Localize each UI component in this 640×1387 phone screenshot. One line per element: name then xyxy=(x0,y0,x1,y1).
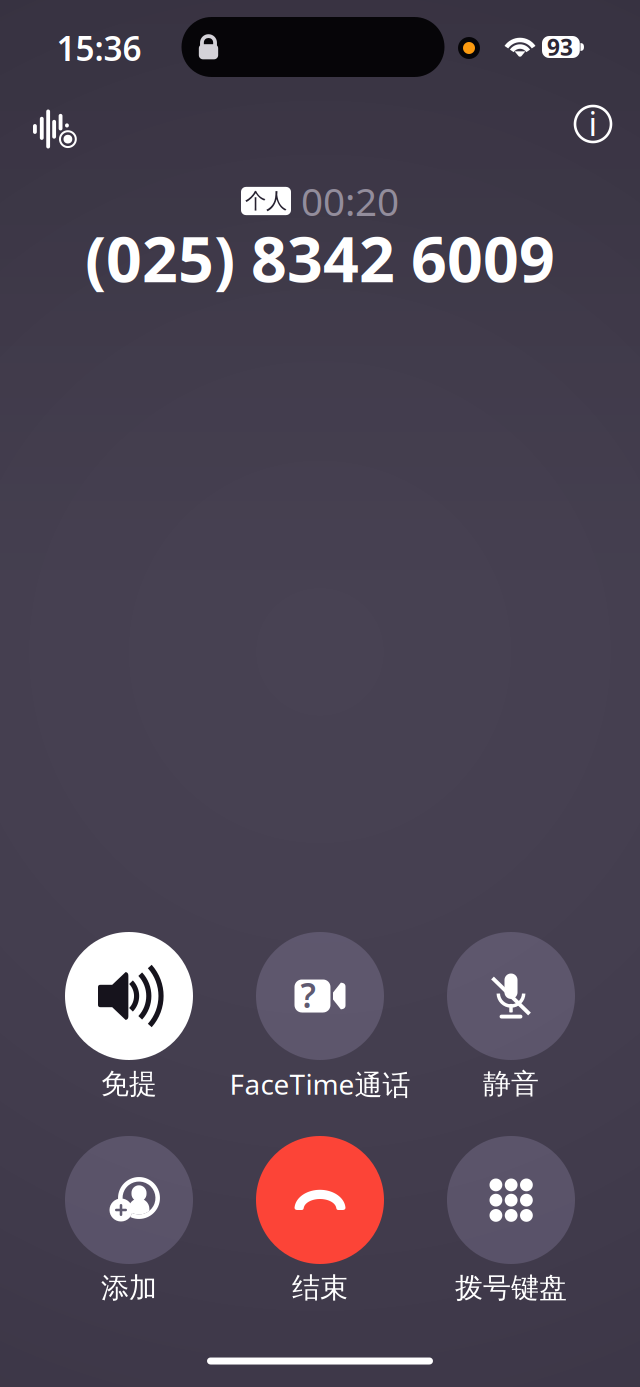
staticText: (025) 8342 6009 xyxy=(85,216,555,300)
staticText: 拨号键盘 xyxy=(455,1271,567,1305)
staticText: i xyxy=(588,101,597,145)
button[interactable]: 免提 xyxy=(0,932,259,1108)
staticText: 15:36 xyxy=(56,26,141,70)
button[interactable]: 静音 xyxy=(381,932,640,1108)
button[interactable]: Call recording xyxy=(19,95,91,162)
button[interactable]: ? xyxy=(190,932,450,1108)
staticText: 个人 xyxy=(245,188,287,214)
button[interactable]: 结束 xyxy=(190,1136,450,1312)
staticText: FaceTime通话 xyxy=(229,1065,410,1103)
staticText: 93 xyxy=(547,32,573,62)
button[interactable]: 拨号键盘 xyxy=(381,1136,640,1312)
staticText: 添加 xyxy=(101,1271,157,1305)
staticText: 免提 xyxy=(101,1067,157,1101)
button[interactable]: 添加 xyxy=(0,1136,259,1312)
staticText: 静音 xyxy=(483,1067,539,1101)
staticText: 结束 xyxy=(292,1271,348,1305)
button[interactable]: Call info xyxy=(561,92,625,156)
staticText: ? xyxy=(300,973,315,1017)
staticText: 00:20 xyxy=(301,175,399,227)
